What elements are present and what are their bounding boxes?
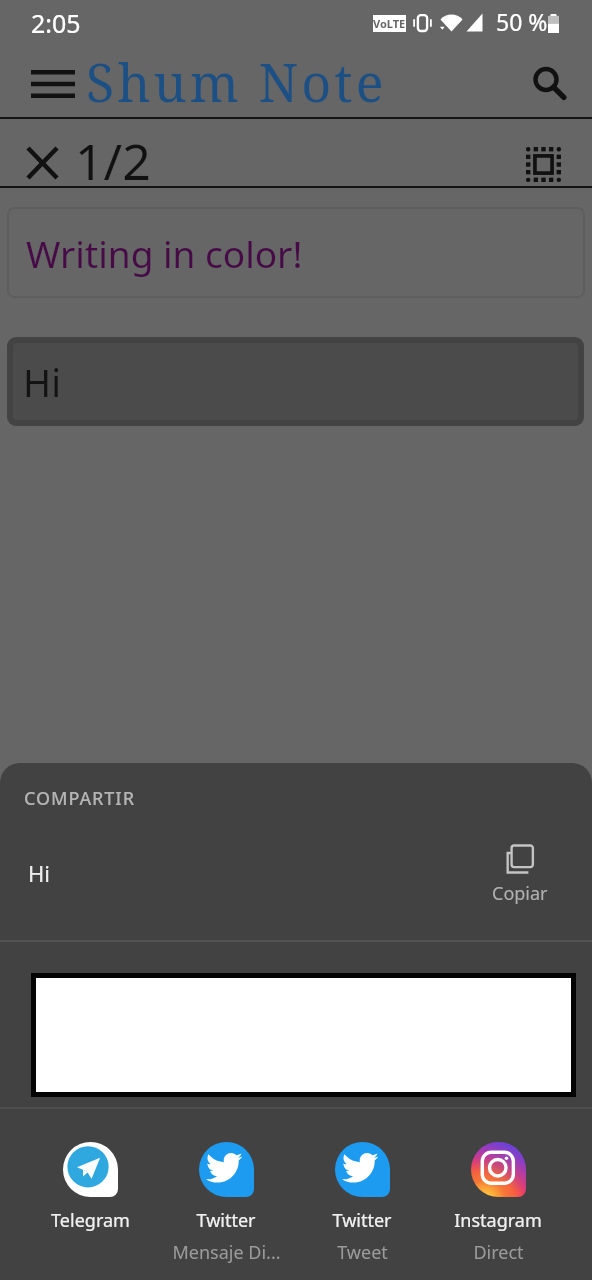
staticText: Writing in color! — [26, 228, 303, 278]
staticText: Hi — [23, 356, 61, 408]
button[interactable]: Twitter — [158, 1115, 294, 1280]
staticText: Copiar — [492, 881, 548, 906]
staticText: 50 % — [496, 6, 548, 37]
staticText: Twitter — [196, 1208, 256, 1233]
button[interactable]: Telegram — [22, 1115, 158, 1280]
button[interactable]: Copiar — [478, 844, 562, 906]
staticText: Telegram — [51, 1208, 130, 1233]
staticText: Tweet — [337, 1240, 388, 1265]
staticText: Hi — [28, 858, 50, 888]
button[interactable]: Select all — [519, 140, 567, 188]
button[interactable]: Instagram — [430, 1115, 566, 1280]
staticText: VoLTE — [373, 16, 406, 31]
staticText: Instagram — [454, 1208, 542, 1233]
staticText: Shum Note — [86, 46, 387, 117]
button[interactable]: Close — [13, 134, 71, 192]
staticText: Twitter — [332, 1208, 392, 1233]
staticText: Mensaje Di... — [172, 1240, 281, 1265]
button[interactable]: Search — [525, 60, 573, 108]
staticText: 1/2 — [75, 127, 151, 195]
staticText: Direct — [473, 1240, 524, 1265]
staticText: COMPARTIR — [24, 786, 135, 811]
button[interactable]: Writing in color! — [7, 207, 585, 298]
staticText: 2:05 — [31, 6, 81, 40]
button[interactable]: Hi — [7, 337, 584, 426]
button[interactable]: Menu — [23, 54, 83, 114]
button[interactable]: Twitter — [294, 1115, 430, 1280]
